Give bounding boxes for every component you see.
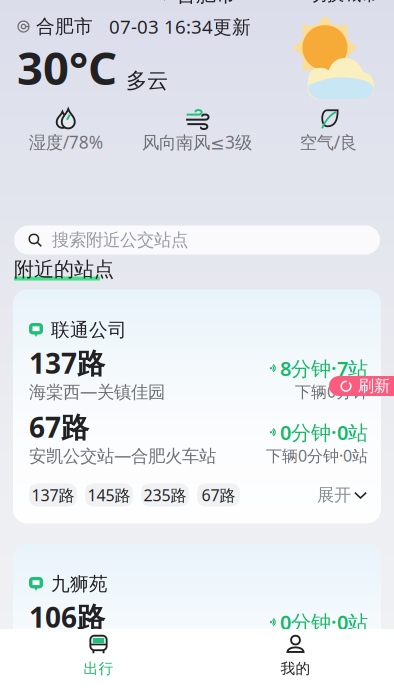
button[interactable]: 145路 [85,483,133,506]
button[interactable]: 我的 [197,625,394,700]
staticText: 九狮苑 [51,572,108,595]
button[interactable]: 137路 [29,483,77,506]
staticText: 下辆0分钟·0站 [266,445,368,466]
staticText: 切换城市 [310,0,378,5]
staticText: 145路 [87,484,130,505]
staticText: 刷新 [358,376,390,396]
staticText: 67路 [201,484,235,505]
button[interactable]: 235路 [141,483,189,506]
staticText: 海棠西—关镇佳园 [29,380,165,403]
staticText: 安凯公交站—合肥火车站 [29,444,216,467]
button[interactable]: 附近的站点 [0,254,114,281]
staticText: 137路 [29,344,105,381]
staticText: 8分钟·7站 [280,355,368,381]
staticText: 我的 [280,659,310,677]
staticText: 展开 [317,484,351,506]
staticText: 106路 [29,598,105,635]
staticText: 出行 [83,659,113,677]
staticText: 合肥市 [36,15,93,38]
staticText: 合肥市 [176,0,236,7]
staticText: 137路 [31,484,74,505]
staticText: 30°C [17,37,117,98]
button[interactable]: 切换城市 [294,0,394,12]
staticText: 附近的站点 [14,257,114,282]
button[interactable]: 刷新 [329,376,394,396]
button[interactable]: 出行 [0,625,197,700]
staticText: 下辆0分钟·0站 [266,635,368,656]
staticText: 湿度/78% [29,130,103,153]
staticText: 235路 [143,484,186,505]
staticText: 海河路口—建材一厂 [29,634,182,657]
staticText: 空气/良 [300,130,357,153]
staticText: 0分钟·0站 [280,609,368,635]
staticText: 风向南风≤3级 [142,130,252,153]
staticText: 多云 [126,67,168,94]
button[interactable]: 67路 [197,483,240,506]
staticText: 下辆0分钟 [295,381,368,402]
staticText: 67路 [29,408,89,445]
staticText: 联通公司 [51,318,127,341]
button[interactable]: 搜索附近公交站点 [14,225,380,254]
button[interactable]: 展开 [317,483,368,506]
staticText: 搜索附近公交站点 [52,229,188,251]
staticText: 0分钟·0站 [280,419,368,445]
staticText: 07-03 16:34更新 [109,14,251,39]
